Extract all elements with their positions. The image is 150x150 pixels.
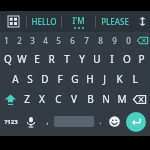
button[interactable]: C [50,89,66,109]
staticText: V [71,92,77,106]
staticText: S [27,72,33,86]
button[interactable]: J [97,69,112,89]
staticText: L [132,72,138,86]
staticText: 1 [4,35,9,46]
button[interactable]: 0 [121,32,135,49]
staticText: 8 [98,35,103,46]
staticText: B [87,92,94,106]
staticText: F [57,72,63,86]
button[interactable]: 7 [79,32,93,49]
staticText: 0 [126,35,131,46]
staticText: 9 [112,35,117,46]
button[interactable]: M [114,89,130,109]
button[interactable]: B [82,89,98,109]
button[interactable]: I [104,49,119,69]
button[interactable]: Backspace [135,32,150,49]
button[interactable]: , [40,109,54,134]
staticText: C [55,92,62,106]
button[interactable]: T [59,49,74,69]
staticText: ?123 [4,118,18,126]
staticText: . [99,114,102,126]
button[interactable]: S [22,69,37,89]
button[interactable]: 2 [13,32,26,49]
staticText: K [116,72,123,86]
button[interactable]: V [66,89,82,109]
button[interactable]: H [82,69,97,89]
staticText: 2 [17,35,22,46]
staticText: N [102,92,110,106]
staticText: H [86,72,94,86]
button[interactable]: A [8,69,22,89]
staticText: HELLO [31,16,57,27]
staticText: O [123,52,131,66]
staticText: D [41,72,49,86]
staticText: PLEASE [101,16,129,27]
button[interactable]: HELLO [27,11,61,32]
button[interactable]: Voice input [22,109,40,134]
button[interactable]: 5 [52,32,65,49]
staticText: Y [79,52,85,66]
button[interactable]: 1 [0,32,13,49]
button[interactable]: Keyboard options [0,11,26,32]
button[interactable]: R [44,49,59,69]
button[interactable]: Emoji [107,109,122,134]
button[interactable]: Shift [1,89,19,109]
button[interactable]: 8 [93,32,107,49]
button[interactable]: PLEASE [96,11,134,32]
staticText: 5 [56,35,61,46]
staticText: W [17,52,27,66]
button[interactable]: N [98,89,114,109]
button[interactable]: ?123 [0,109,22,134]
button[interactable]: Y [74,49,89,69]
staticText: X [39,92,45,106]
button[interactable]: Q [1,49,15,69]
staticText: T [64,52,70,66]
staticText: 4 [43,35,48,46]
button[interactable]: Backspace [130,89,149,109]
button[interactable]: 9 [107,32,121,49]
button[interactable]: F [52,69,67,89]
button[interactable]: O [119,49,134,69]
button[interactable]: L [127,69,142,89]
button[interactable]: Expand suggestions [134,11,150,32]
staticText: A [12,72,19,86]
button[interactable]: U [89,49,104,69]
button[interactable]: Z [19,89,34,109]
staticText: G [71,72,79,86]
button[interactable]: X [34,89,50,109]
button[interactable]: E [29,49,44,69]
staticText: J [103,72,106,86]
staticText: 3 [30,35,35,46]
button[interactable]: I'M [62,11,95,32]
button[interactable]: W [15,49,29,69]
button[interactable]: 4 [39,32,52,49]
staticText: R [48,52,55,66]
staticText: I'M [72,15,85,26]
button[interactable]: . [94,109,107,134]
button[interactable]: 3 [26,32,39,49]
staticText: I [110,52,114,66]
staticText: 7 [84,35,89,46]
staticText: Z [24,92,30,106]
button[interactable]: Enter [126,112,146,132]
staticText: E [34,52,40,66]
staticText: Q [4,52,12,66]
staticText: P [138,52,145,66]
staticText: 6 [70,35,75,46]
button[interactable]: K [112,69,127,89]
button[interactable]: P [134,49,149,69]
button[interactable]: G [67,69,82,89]
staticText: , [46,114,49,126]
button[interactable]: D [37,69,52,89]
staticText: M [117,92,127,106]
button[interactable]: 6 [65,32,79,49]
staticText: U [93,52,101,66]
